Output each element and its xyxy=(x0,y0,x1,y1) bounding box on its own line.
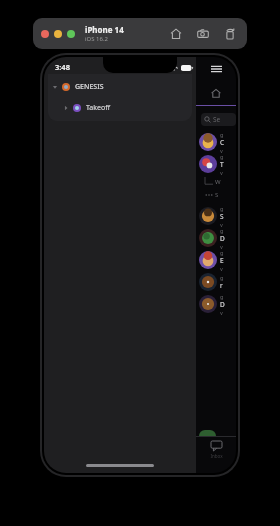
staticText: r xyxy=(220,281,223,290)
staticText: Inbox xyxy=(210,453,223,459)
button[interactable]: Menu xyxy=(196,61,236,77)
staticText: y xyxy=(220,265,223,271)
button[interactable]: Zoom window xyxy=(67,30,75,38)
staticText: g xyxy=(220,249,224,256)
button[interactable]: Screenshot xyxy=(194,25,211,42)
button[interactable]: g xyxy=(196,293,236,315)
staticText: g xyxy=(220,227,224,234)
button[interactable]: Inbox xyxy=(196,437,236,463)
button[interactable]: Se xyxy=(201,113,236,126)
staticText: W xyxy=(215,178,221,186)
staticText: S xyxy=(220,212,224,221)
button[interactable]: Home xyxy=(196,85,236,101)
staticText: GENESIS xyxy=(75,82,104,92)
staticText: E xyxy=(220,256,224,265)
button[interactable]: g xyxy=(196,131,236,153)
staticText: S xyxy=(215,191,219,199)
staticText: T xyxy=(220,160,224,169)
staticText: y xyxy=(220,147,223,153)
staticText: Takeoff xyxy=(86,103,110,113)
staticText: Se xyxy=(213,115,221,124)
staticText: g xyxy=(220,293,224,300)
staticText: iOS 16.2 xyxy=(85,35,108,43)
staticText: g xyxy=(220,153,224,160)
button[interactable]: Close window xyxy=(41,30,49,38)
staticText: y xyxy=(220,243,223,249)
staticText: g xyxy=(220,205,224,212)
button[interactable]: g xyxy=(196,205,236,227)
staticText: iPhone 14 xyxy=(85,24,124,35)
staticText: y xyxy=(220,169,223,175)
button[interactable]: GENESIS xyxy=(48,80,192,94)
staticText: g xyxy=(220,131,224,138)
staticText: 3:48 xyxy=(55,62,70,72)
staticText: y xyxy=(220,221,223,227)
button[interactable]: g xyxy=(196,271,236,293)
staticText: g xyxy=(220,274,224,281)
staticText: y xyxy=(220,309,223,315)
staticText: D xyxy=(220,300,225,309)
staticText: C xyxy=(220,138,225,147)
button[interactable]: Takeoff xyxy=(48,101,192,115)
button[interactable]: g xyxy=(196,249,236,271)
button[interactable]: g xyxy=(196,153,236,175)
button[interactable]: g xyxy=(196,227,236,249)
button[interactable]: Rotate device xyxy=(221,25,238,42)
staticText: D xyxy=(220,234,225,243)
button[interactable]: Home xyxy=(167,25,184,42)
button[interactable]: S xyxy=(205,189,236,201)
button[interactable]: Minimise window xyxy=(54,30,62,38)
